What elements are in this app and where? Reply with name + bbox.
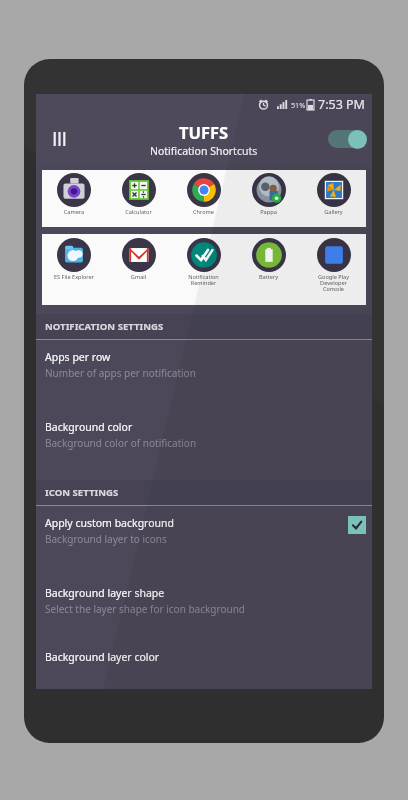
- staticText: Gmail: [106, 273, 171, 281]
- button[interactable]: Background color: [36, 410, 372, 480]
- staticText: NOTIFICATION SETTINGS: [45, 320, 164, 333]
- staticText: Background color: [45, 420, 133, 434]
- button[interactable]: Background layer shape: [36, 576, 372, 646]
- button[interactable]: ES File Explorer: [42, 234, 106, 305]
- button[interactable]: Google Play Developer Console: [301, 234, 366, 305]
- staticText: Notification Reminder: [171, 273, 236, 287]
- staticText: 7:53 PM: [318, 96, 365, 113]
- staticText: Calculator: [106, 208, 171, 216]
- staticText: Background layer color: [45, 650, 160, 664]
- button[interactable]: Pappa: [236, 170, 301, 227]
- staticText: Background layer to icons: [45, 532, 167, 546]
- button[interactable]: Enable shortcuts: [324, 124, 370, 154]
- button[interactable]: Camera: [42, 170, 106, 227]
- button[interactable]: Calculator: [106, 170, 171, 227]
- button[interactable]: Gallery: [301, 170, 366, 227]
- button[interactable]: Apps per row: [36, 340, 372, 410]
- staticText: Pappa: [236, 208, 301, 216]
- staticText: Select the layer shape for icon backgrou…: [45, 602, 245, 616]
- staticText: ICON SETTINGS: [45, 486, 119, 499]
- staticText: Camera: [42, 208, 106, 216]
- staticText: 51%: [291, 100, 306, 110]
- button[interactable]: Battery: [236, 234, 301, 305]
- staticText: Gallery: [301, 208, 366, 216]
- staticText: Google Play Developer Console: [301, 273, 366, 293]
- staticText: Chrome: [171, 208, 236, 216]
- button[interactable]: Notification Reminder: [171, 234, 236, 305]
- staticText: Notification Shortcuts: [150, 144, 258, 158]
- staticText: TUFFS: [179, 121, 229, 143]
- staticText: Background layer shape: [45, 586, 165, 600]
- staticText: Battery: [236, 273, 301, 281]
- staticText: ES File Explorer: [42, 273, 106, 281]
- staticText: Number of apps per notification: [45, 366, 196, 380]
- button[interactable]: Apply custom background: [36, 506, 372, 576]
- staticText: Background color of notification: [45, 436, 197, 450]
- button[interactable]: Menu: [44, 124, 74, 154]
- staticText: Apply custom background: [45, 516, 175, 530]
- staticText: Apps per row: [45, 350, 111, 364]
- button[interactable]: Chrome: [171, 170, 236, 227]
- button[interactable]: Gmail: [106, 234, 171, 305]
